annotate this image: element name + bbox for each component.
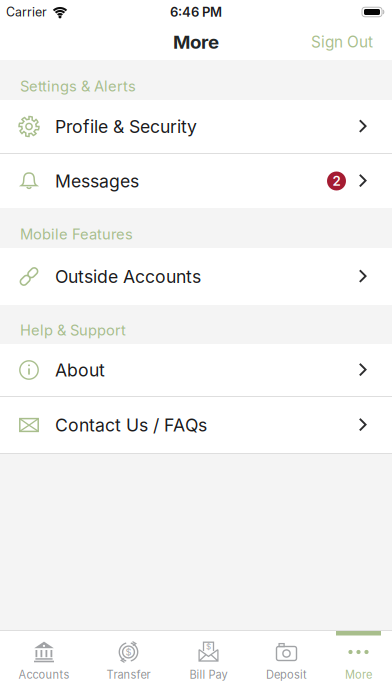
staticText: Bill Pay: [189, 668, 227, 681]
staticText: Carrier: [6, 4, 47, 19]
staticText: Messages: [55, 170, 139, 192]
staticText: Accounts: [18, 668, 69, 681]
button[interactable]: More: [325, 631, 392, 696]
staticText: 2: [332, 173, 340, 189]
staticText: $: [206, 642, 211, 651]
button[interactable]: Deposit: [248, 631, 325, 696]
button[interactable]: $: [169, 631, 248, 696]
staticText: Sign Out: [311, 33, 373, 51]
button[interactable]: Outside Accounts: [0, 248, 392, 305]
button[interactable]: Contact Us / FAQs: [0, 397, 392, 453]
staticText: Contact Us / FAQs: [55, 414, 207, 436]
staticText: Deposit: [266, 668, 307, 681]
button[interactable]: Messages: [0, 154, 392, 208]
button[interactable]: Profile & Security: [0, 100, 392, 153]
staticText: Mobile Features: [20, 225, 133, 243]
staticText: More: [345, 668, 372, 681]
button[interactable]: Sign Out: [311, 33, 373, 51]
staticText: Profile & Security: [55, 116, 197, 137]
staticText: Outside Accounts: [55, 266, 201, 287]
button[interactable]: About: [0, 344, 392, 396]
staticText: Settings & Alerts: [20, 77, 136, 95]
staticText: Transfer: [106, 668, 150, 681]
staticText: About: [55, 359, 105, 381]
staticText: Help & Support: [20, 321, 126, 339]
button[interactable]: Accounts: [0, 631, 88, 696]
staticText: 6:46 PM: [170, 4, 222, 20]
button[interactable]: $: [88, 631, 169, 696]
staticText: More: [173, 31, 219, 53]
staticText: $: [125, 646, 131, 658]
